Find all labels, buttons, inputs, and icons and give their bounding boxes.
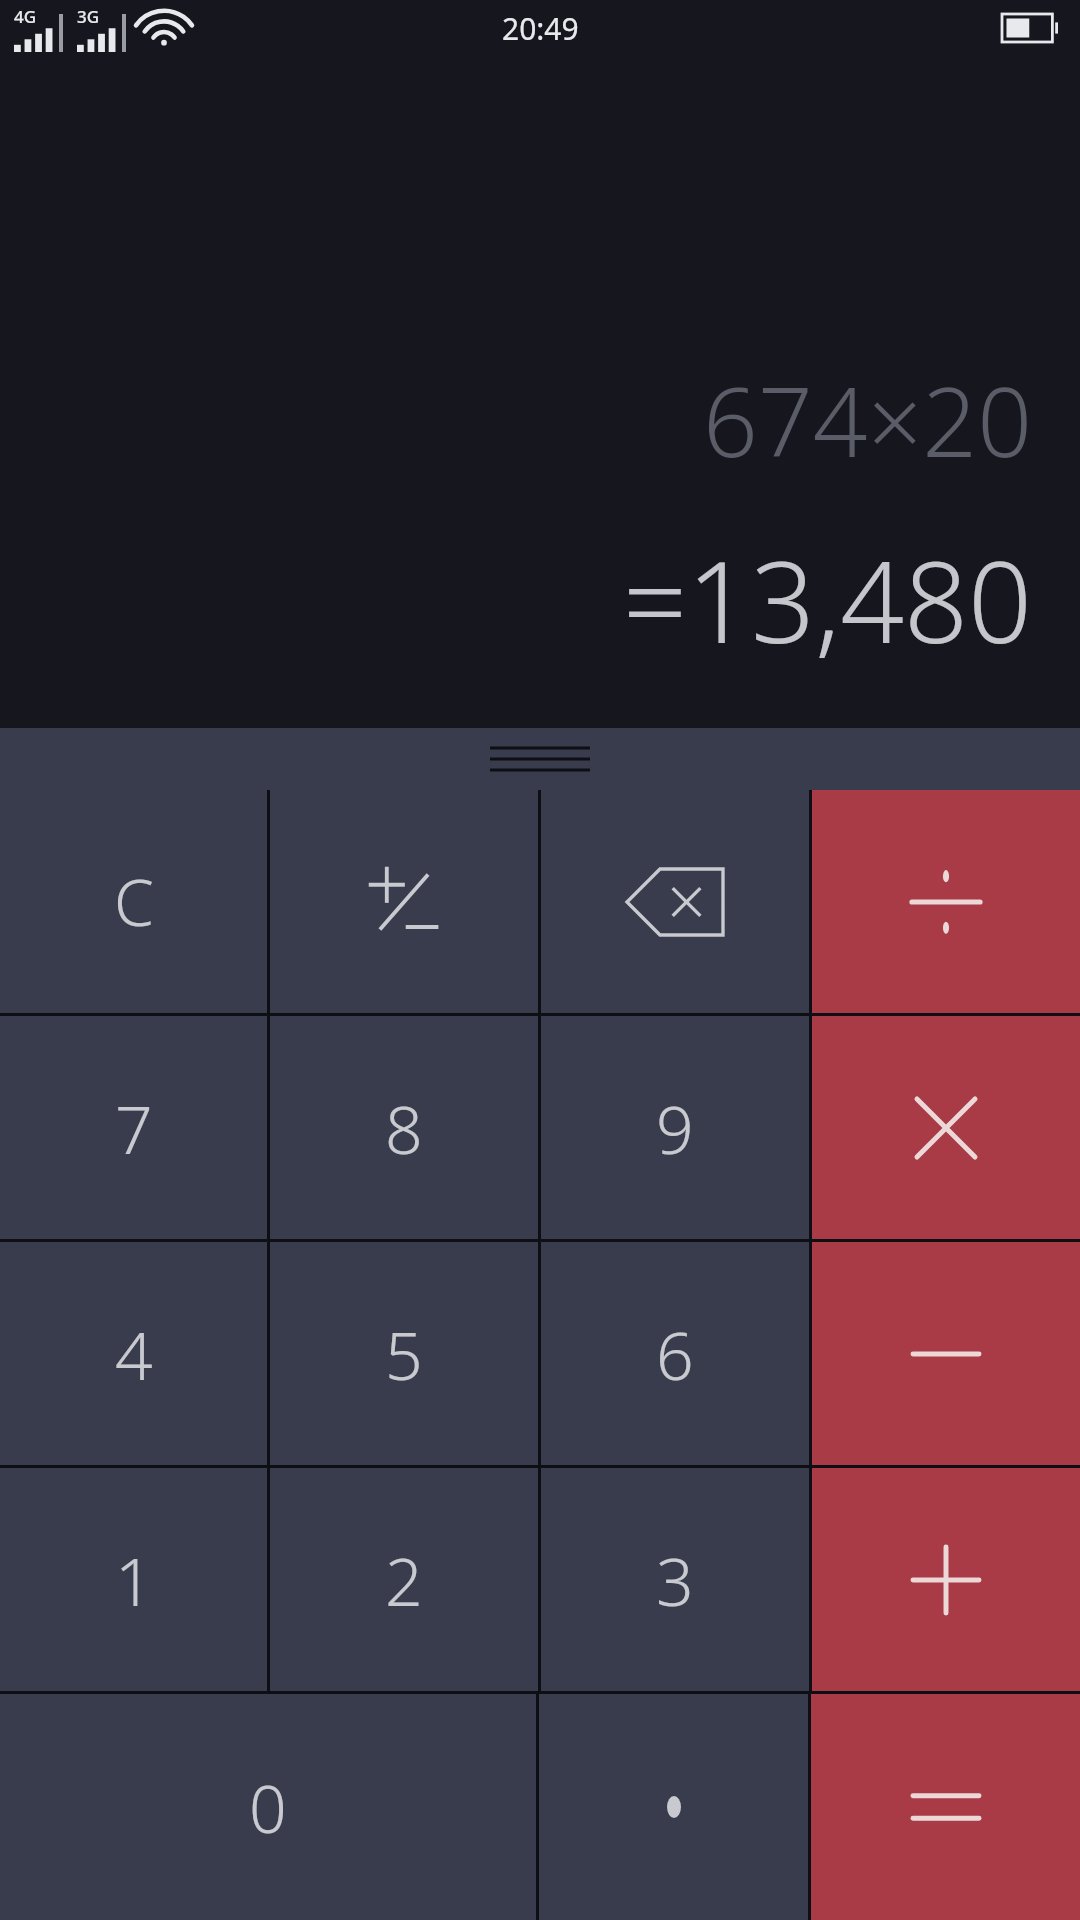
button[interactable]: 4 <box>0 1242 267 1465</box>
staticText: 20:49 <box>502 8 579 49</box>
staticText: 5 <box>385 1309 423 1399</box>
button[interactable]: Plus minus <box>270 790 538 1013</box>
staticText: 674×20 <box>703 354 1032 485</box>
button[interactable]: 6 <box>541 1242 809 1465</box>
button[interactable]: 9 <box>541 1016 809 1239</box>
staticText: 2 <box>385 1535 423 1625</box>
button[interactable]: 2 <box>270 1468 538 1691</box>
button[interactable]: 1 <box>0 1468 267 1691</box>
staticText: 4 <box>115 1309 153 1399</box>
staticText: 9 <box>656 1083 694 1173</box>
button[interactable]: 7 <box>0 1016 267 1239</box>
button[interactable]: Expand history <box>0 728 1080 790</box>
staticText: 8 <box>385 1083 423 1173</box>
button[interactable]: Decimal point <box>539 1694 808 1920</box>
button[interactable]: Divide <box>812 790 1080 1013</box>
staticText: 3G <box>77 5 100 28</box>
button[interactable]: 3 <box>541 1468 809 1691</box>
button[interactable]: C <box>0 790 267 1013</box>
button[interactable]: 8 <box>270 1016 538 1239</box>
staticText: 0 <box>249 1762 287 1852</box>
button[interactable]: 5 <box>270 1242 538 1465</box>
staticText: C <box>114 858 154 945</box>
button[interactable]: 0 <box>0 1694 536 1920</box>
staticText: 6 <box>656 1309 694 1399</box>
button[interactable]: Equals <box>811 1694 1080 1920</box>
staticText: 7 <box>115 1083 153 1173</box>
button[interactable]: Backspace <box>541 790 809 1013</box>
staticText: 4G <box>14 5 37 28</box>
staticText: =13,480 <box>623 523 1032 676</box>
staticText: 1 <box>115 1535 153 1625</box>
button[interactable]: Multiply <box>812 1016 1080 1239</box>
button[interactable]: Plus <box>812 1468 1080 1691</box>
staticText: 3 <box>656 1535 694 1625</box>
button[interactable]: Minus <box>812 1242 1080 1465</box>
